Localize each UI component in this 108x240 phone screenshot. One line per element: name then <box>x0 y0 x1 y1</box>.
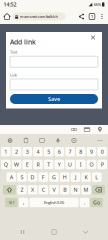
button[interactable]: Go <box>90 198 103 207</box>
staticText: Z <box>20 186 23 193</box>
button[interactable]: . <box>80 198 89 207</box>
button[interactable]: P <box>97 160 107 169</box>
button[interactable]: Insert link <box>67 125 80 134</box>
staticText: U <box>68 161 72 168</box>
button[interactable]: GIF <box>34 135 50 146</box>
button[interactable]: 8 <box>76 147 85 156</box>
button[interactable]: S <box>17 172 27 182</box>
staticText: N <box>73 186 77 193</box>
staticText: L <box>95 174 98 181</box>
button[interactable]: Y <box>55 160 64 169</box>
staticText: 8 <box>79 148 82 155</box>
button[interactable]: C <box>38 185 48 194</box>
button[interactable]: X <box>28 185 37 194</box>
staticText: 5 <box>47 148 50 155</box>
staticText: M <box>84 186 89 193</box>
staticText: O <box>89 161 93 168</box>
button[interactable]: Home <box>45 224 63 240</box>
button[interactable]: !#1 <box>5 198 18 207</box>
staticText: 2 <box>15 148 18 155</box>
staticText: K <box>85 174 88 181</box>
button[interactable]: Tabs <box>86 9 97 24</box>
button[interactable]: Menu <box>97 9 106 24</box>
button[interactable]: Voice input <box>50 135 66 146</box>
button[interactable]: Q <box>1 160 11 169</box>
staticText: H <box>63 174 67 181</box>
button[interactable]: 4 <box>33 147 43 156</box>
staticText: I <box>80 161 82 168</box>
button[interactable]: V <box>49 185 59 194</box>
staticText: Y <box>58 161 61 168</box>
staticText: mumsnet.com/talk/ch <box>20 14 58 19</box>
button[interactable]: R <box>33 160 43 169</box>
button[interactable]: 5 <box>44 147 53 156</box>
staticText: A <box>10 174 13 181</box>
staticText: X <box>31 186 34 193</box>
button[interactable]: Address <box>93 125 106 134</box>
button[interactable]: English (US) <box>29 198 78 207</box>
staticText: 3 <box>26 148 29 155</box>
button[interactable]: A <box>6 172 16 182</box>
button[interactable]: Shift <box>3 185 16 194</box>
staticText: E <box>26 161 29 168</box>
button[interactable]: 6 <box>55 147 64 156</box>
staticText: 4 <box>36 148 39 155</box>
button[interactable]: 3 <box>22 147 32 156</box>
staticText: 1 <box>4 148 7 155</box>
button[interactable]: N <box>71 185 80 194</box>
button[interactable]: Recents <box>13 224 31 240</box>
staticText: P <box>101 161 104 168</box>
staticText: D <box>31 174 35 181</box>
button[interactable]: 1 <box>1 147 11 156</box>
staticText: Q <box>4 161 8 168</box>
button[interactable]: 9 <box>87 147 96 156</box>
button[interactable]: Z <box>17 185 27 194</box>
button[interactable]: 7 <box>65 147 75 156</box>
button[interactable]: mumsnet.com/talk/ch <box>12 12 65 21</box>
button[interactable]: J <box>71 172 80 182</box>
button[interactable]: Settings <box>66 135 82 146</box>
staticText: R <box>36 161 39 168</box>
button[interactable]: Stickers <box>2 135 18 146</box>
button[interactable]: G <box>49 172 59 182</box>
button[interactable]: L <box>92 172 102 182</box>
staticText: Go <box>93 199 100 206</box>
button[interactable]: Home <box>1 9 12 24</box>
staticText: W <box>14 161 19 168</box>
staticText: B <box>63 186 66 193</box>
button[interactable]: K <box>81 172 91 182</box>
staticText: Add link <box>10 37 36 46</box>
button[interactable]: Clipboard <box>18 135 34 146</box>
staticText: Save <box>48 95 60 102</box>
button[interactable]: 0 <box>97 147 107 156</box>
button[interactable]: , <box>19 198 28 207</box>
button[interactable]: F <box>38 172 48 182</box>
button[interactable]: O <box>87 160 96 169</box>
staticText: 9 <box>90 148 93 155</box>
button[interactable]: Share <box>76 9 86 24</box>
button[interactable]: 2 <box>12 147 21 156</box>
staticText: !#1 <box>8 200 14 205</box>
staticText: V <box>52 186 55 193</box>
button[interactable]: M <box>81 185 91 194</box>
button[interactable]: U <box>65 160 75 169</box>
button[interactable]: B <box>60 185 69 194</box>
button[interactable]: Close <box>88 32 98 43</box>
button[interactable]: Hide keyboard <box>76 224 94 240</box>
button[interactable]: Backspace <box>92 185 105 194</box>
staticText: 1 <box>91 14 93 19</box>
button[interactable]: E <box>22 160 32 169</box>
staticText: Link <box>10 72 17 77</box>
button[interactable]: H <box>60 172 69 182</box>
button[interactable]: I <box>76 160 85 169</box>
staticText: 6 <box>58 148 61 155</box>
staticText: . <box>84 199 85 206</box>
staticText: , <box>23 199 24 206</box>
staticText: 7 <box>69 148 72 155</box>
button[interactable]: W <box>12 160 21 169</box>
button[interactable]: Payment card <box>80 125 93 134</box>
button[interactable]: T <box>44 160 53 169</box>
button[interactable]: Save <box>10 94 98 104</box>
button[interactable]: More <box>94 135 106 146</box>
button[interactable]: D <box>28 172 37 182</box>
